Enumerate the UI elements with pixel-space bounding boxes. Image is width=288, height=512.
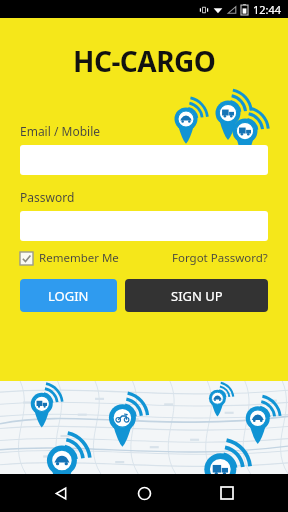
staticText: HC-CARGO	[73, 42, 216, 80]
button[interactable]	[20, 211, 268, 241]
staticText: Remember Me	[39, 250, 119, 266]
staticText: SIGN UP	[171, 287, 223, 305]
staticText: LOGIN	[48, 287, 89, 305]
button[interactable]: Home	[122, 474, 166, 512]
button[interactable]: LOGIN	[20, 279, 117, 312]
button[interactable]: Recent apps	[205, 474, 249, 512]
button[interactable]: Forgot Password?	[172, 250, 268, 266]
staticText: Password	[20, 189, 75, 205]
button[interactable]	[20, 145, 268, 175]
button[interactable]: Remember Me	[20, 250, 119, 266]
button[interactable]: SIGN UP	[125, 279, 268, 312]
button[interactable]: Back	[39, 474, 83, 512]
staticText: Email / Mobile	[20, 123, 101, 139]
staticText: Forgot Password?	[172, 250, 268, 266]
staticText: 12:44	[253, 2, 282, 17]
